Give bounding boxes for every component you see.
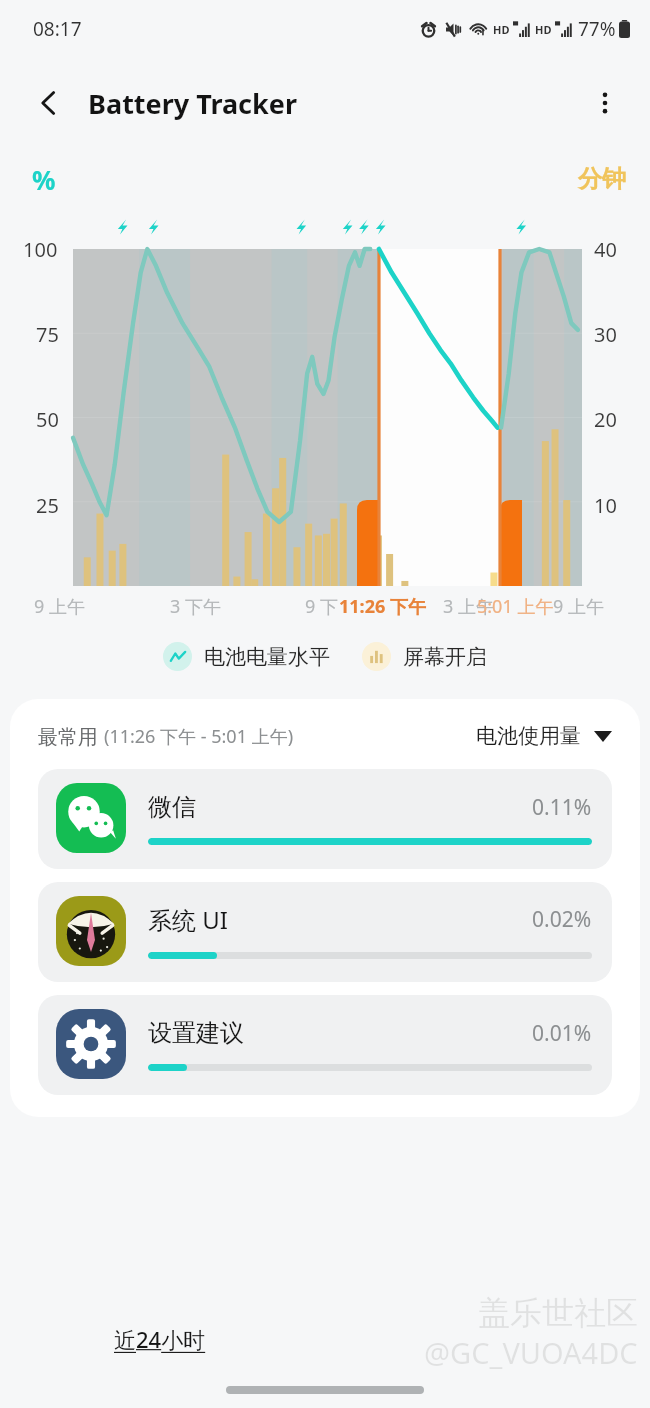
button[interactable]: 电池电量水平 [159,638,334,675]
staticText: HD [493,22,510,37]
staticText: 最常用 [38,723,104,750]
staticText: 微信 [148,792,196,822]
staticText: 30 [594,321,617,348]
button[interactable]: 设置建议 [38,995,612,1095]
button[interactable]: 屏幕开启 [358,638,491,675]
staticText: 3 下午 [170,594,221,619]
staticText: 75 [36,321,59,348]
button[interactable]: 系统 UI [38,882,612,982]
button[interactable]: 微信 [38,769,612,869]
staticText: 系统 UI [148,903,228,936]
staticText: 20 [594,406,617,433]
staticText: 5:01 上午 [477,594,554,619]
button[interactable]: Back [22,76,76,130]
staticText: 0.11% [532,793,592,822]
staticText: 9 上午 [553,594,604,619]
staticText: 25 [36,492,59,519]
staticText: 近24小时 [114,1324,206,1354]
staticText: 10 [594,492,617,519]
staticText: 100 [23,236,58,263]
button[interactable]: 近24小时 [110,1320,210,1358]
staticText: 设置建议 [148,1018,244,1048]
staticText: @GC_VUOA4DC [424,1333,638,1372]
button[interactable]: 电池使用量 [476,719,612,753]
staticText: 0.01% [532,1019,592,1048]
staticText: Battery Tracker [88,85,297,122]
staticText: HD [535,22,552,37]
staticText: 3 上午 [443,594,494,619]
button[interactable]: More options [578,76,632,130]
staticText: 盖乐世社区 [478,1293,638,1333]
staticText: 11:26 下午 [339,594,426,619]
staticText: 50 [36,406,59,433]
staticText: 0.02% [532,905,592,934]
staticText: 电池电量水平 [204,644,330,670]
staticText: 9 上午 [34,594,85,619]
staticText: 分钟 [578,164,626,194]
staticText: 08:17 [33,16,82,42]
staticText: (11:26 下午 - 5:01 上午) [104,724,294,749]
staticText: 9 下 [305,594,338,619]
staticText: 77% [578,16,616,42]
staticText: 屏幕开启 [403,644,487,670]
staticText: % [32,162,56,197]
staticText: 40 [594,236,617,263]
staticText: 电池使用量 [476,723,581,749]
